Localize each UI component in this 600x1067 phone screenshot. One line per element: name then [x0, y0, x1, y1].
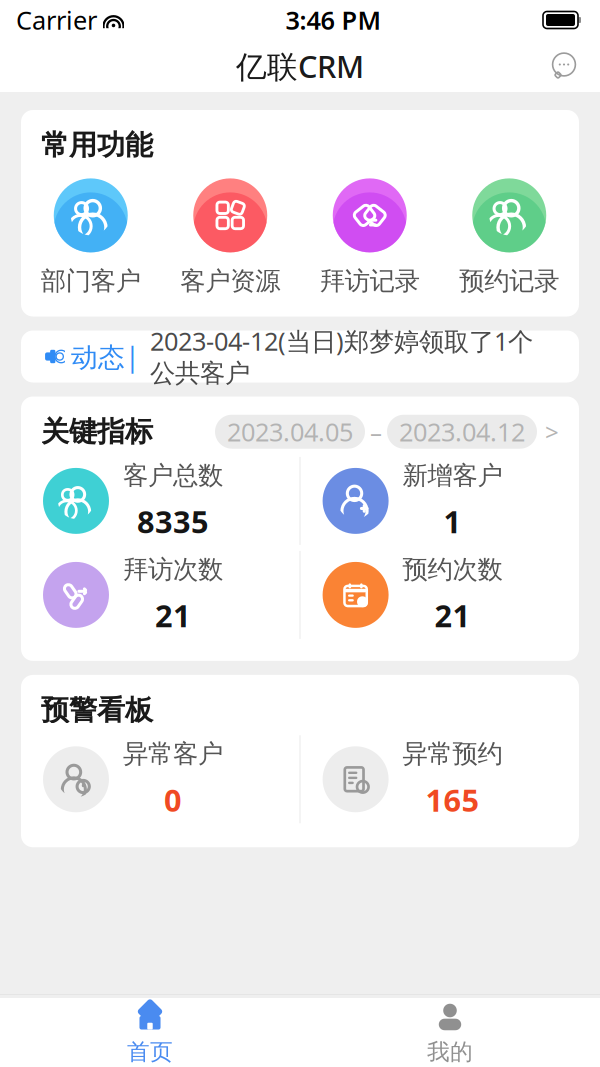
- button[interactable]: 首页: [0, 992, 300, 1066]
- staticText: 3:46 PM: [285, 3, 381, 37]
- button[interactable]: 拜访次数: [21, 554, 299, 636]
- button[interactable]: 部门客户: [21, 178, 160, 296]
- staticText: 8335: [137, 501, 209, 542]
- staticText: 新增客户: [403, 460, 503, 491]
- staticText: 异常预约: [403, 738, 503, 769]
- staticText: 拜访次数: [123, 554, 223, 585]
- staticText: 2023.04.05: [227, 415, 353, 448]
- staticText: 2023.04.12: [399, 415, 525, 448]
- button[interactable]: 异常客户: [21, 738, 299, 820]
- staticText: 首页: [127, 1038, 173, 1066]
- button[interactable]: 客户资源: [160, 178, 300, 296]
- staticText: 2023-04-12(当日)郑梦婷领取了1个公共客户: [150, 324, 533, 389]
- staticText: 常用功能: [41, 128, 153, 162]
- staticText: 0: [164, 779, 182, 820]
- staticText: 客户总数: [123, 460, 223, 491]
- staticText: 21: [155, 595, 191, 636]
- button[interactable]: 我的: [300, 992, 600, 1066]
- staticText: >: [545, 416, 559, 448]
- staticText: 动态|: [71, 339, 140, 374]
- staticText: 预警看板: [41, 693, 153, 727]
- button[interactable]: 预约记录: [439, 178, 579, 296]
- staticText: 拜访记录: [320, 265, 420, 296]
- staticText: 165: [426, 779, 480, 820]
- button[interactable]: 消息: [542, 44, 586, 88]
- staticText: 1: [444, 501, 462, 542]
- button[interactable]: 拜访记录: [300, 178, 439, 296]
- staticText: 部门客户: [41, 265, 141, 296]
- staticText: 21: [435, 595, 471, 636]
- staticText: 亿联CRM: [236, 46, 364, 86]
- staticText: 客户资源: [180, 265, 280, 296]
- button[interactable]: 2023.04.05: [215, 415, 559, 449]
- button[interactable]: 新增客户: [301, 460, 579, 542]
- staticText: 预约记录: [459, 265, 559, 296]
- staticText: 预约次数: [403, 554, 503, 585]
- button[interactable]: 动态|: [21, 330, 579, 382]
- staticText: 我的: [427, 1038, 473, 1066]
- button[interactable]: 客户总数: [21, 460, 299, 542]
- staticText: 异常客户: [123, 738, 223, 769]
- staticText: –: [370, 416, 382, 448]
- staticText: 关键指标: [41, 414, 153, 449]
- button[interactable]: 异常预约: [301, 738, 579, 820]
- staticText: Carrier: [16, 3, 97, 37]
- button[interactable]: 预约次数: [301, 554, 579, 636]
